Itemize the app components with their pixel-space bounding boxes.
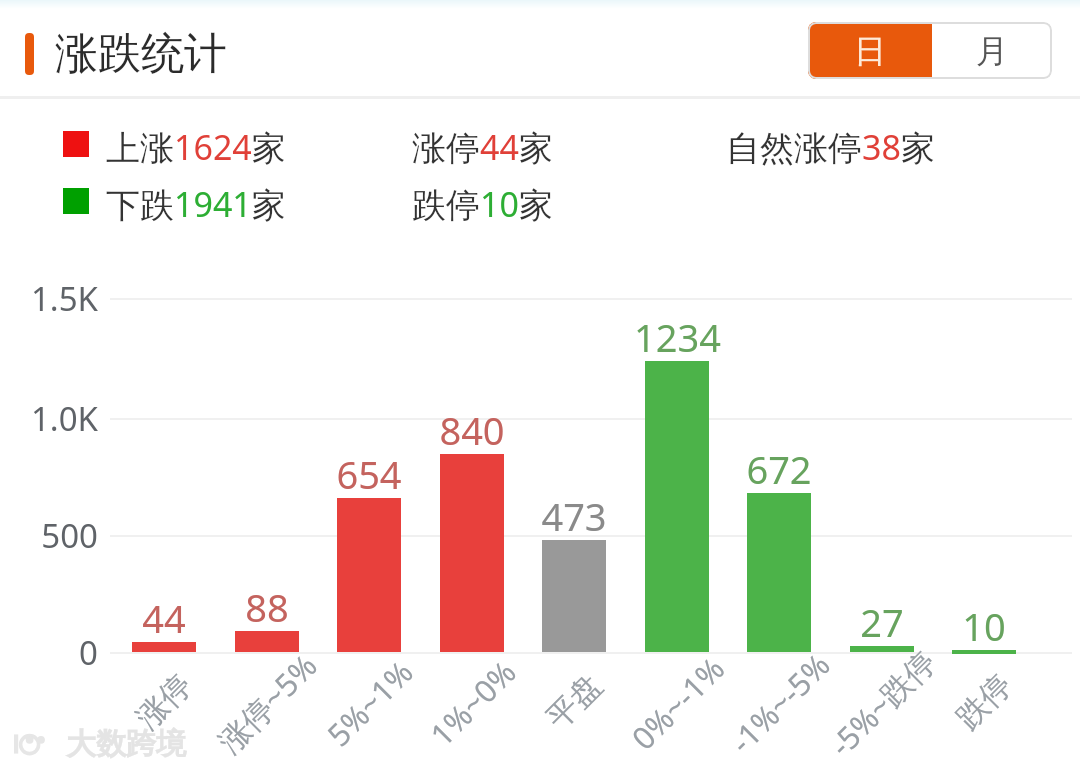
staticText: 654: [336, 448, 402, 500]
staticText: 0: [79, 630, 98, 675]
staticText: 涨停~5%: [208, 644, 326, 762]
staticText: 涨跌统计: [55, 27, 227, 81]
staticText: 5%~1%: [317, 651, 421, 755]
staticText: 1234: [634, 311, 721, 363]
staticText: 1.0K: [30, 396, 98, 441]
staticText: -5%~跌停: [820, 641, 944, 765]
staticText: 672: [746, 443, 812, 495]
staticText: 月: [976, 31, 1008, 71]
staticText: 平盘: [538, 666, 610, 737]
staticText: 上涨1624家: [106, 124, 286, 170]
staticText: 840: [439, 404, 505, 456]
staticText: -1%~-5%: [720, 644, 839, 762]
staticText: 0%~-1%: [622, 647, 733, 758]
staticText: 1.5K: [30, 276, 98, 321]
staticText: 涨停: [128, 666, 200, 737]
button[interactable]: 月: [932, 22, 1052, 79]
staticText: 大数跨境: [66, 725, 186, 763]
staticText: 88: [245, 581, 289, 633]
staticText: 1%~0%: [420, 651, 524, 755]
staticText: 跌停: [948, 666, 1020, 737]
staticText: 473: [541, 490, 607, 542]
button[interactable]: 日: [808, 22, 932, 79]
staticText: 27: [860, 596, 904, 648]
staticText: 自然涨停38家: [726, 124, 935, 170]
staticText: 500: [41, 513, 98, 558]
staticText: 日: [854, 31, 886, 71]
staticText: 10: [962, 600, 1006, 652]
staticText: 涨停44家: [412, 124, 553, 170]
staticText: 跌停10家: [412, 181, 553, 227]
staticText: 下跌1941家: [106, 181, 286, 227]
staticText: 44: [142, 592, 186, 644]
button[interactable]: 涨跌统计: [0, 27, 227, 81]
